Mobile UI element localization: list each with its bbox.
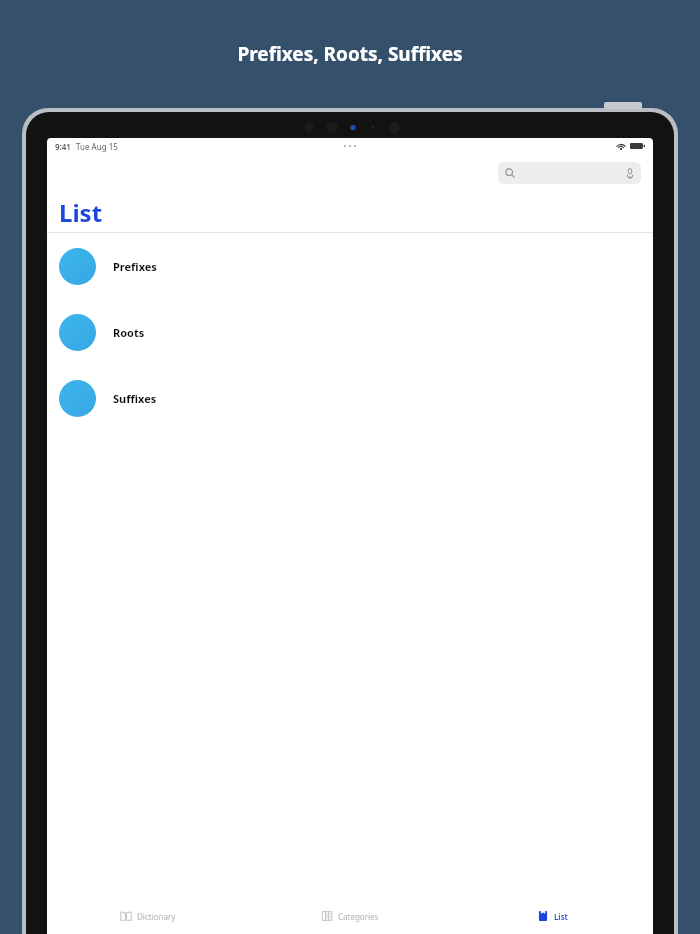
staticText: List <box>59 196 103 229</box>
button[interactable]: List <box>451 898 653 934</box>
button[interactable]: Categories <box>249 898 451 934</box>
staticText: Categories <box>338 911 379 922</box>
staticText: Roots <box>113 325 145 340</box>
staticText: List <box>554 911 568 922</box>
staticText: Prefixes, Roots, Suffixes <box>0 41 700 67</box>
staticText: 9:41 <box>55 141 71 152</box>
staticText: Suffixes <box>113 391 157 406</box>
button[interactable]: Suffixes <box>47 365 653 431</box>
staticText: Dictionary <box>137 911 176 922</box>
button[interactable]: Prefixes <box>47 233 653 299</box>
button[interactable]: Search <box>498 162 641 184</box>
other: List <box>537 910 549 922</box>
other: Categories <box>321 910 333 922</box>
other: Dictionary <box>120 910 132 922</box>
staticText: Tue Aug 15 <box>76 141 118 152</box>
button[interactable]: Roots <box>47 299 653 365</box>
staticText: Prefixes <box>113 259 157 274</box>
button[interactable]: Dictionary <box>47 898 249 934</box>
